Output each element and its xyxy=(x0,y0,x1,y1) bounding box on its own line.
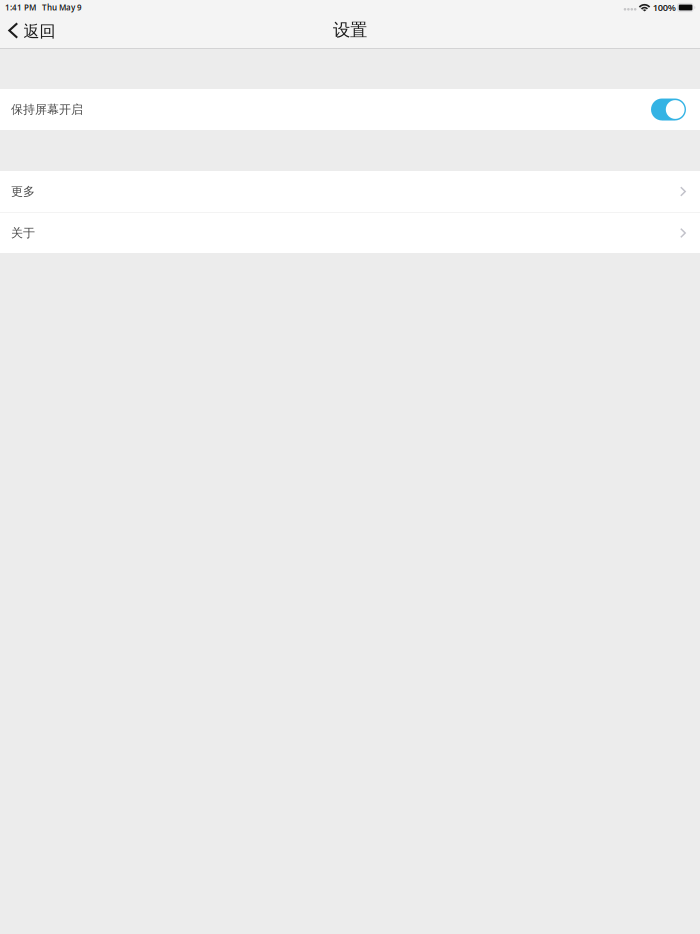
button[interactable]: 关于 xyxy=(0,213,700,253)
staticText: 1:41 PM xyxy=(5,2,36,13)
button[interactable]: 返回 xyxy=(0,15,130,48)
staticText: Thu May 9 xyxy=(42,2,82,13)
staticText: 100% xyxy=(653,1,676,14)
staticText: 更多 xyxy=(11,184,35,199)
staticText: 保持屏幕开启 xyxy=(11,102,83,117)
staticText: 返回 xyxy=(23,22,55,41)
button[interactable]: 更多 xyxy=(0,171,700,212)
button[interactable]: 保持屏幕开启 xyxy=(0,89,700,130)
staticText: 设置 xyxy=(333,19,367,41)
staticText: 关于 xyxy=(11,226,35,240)
